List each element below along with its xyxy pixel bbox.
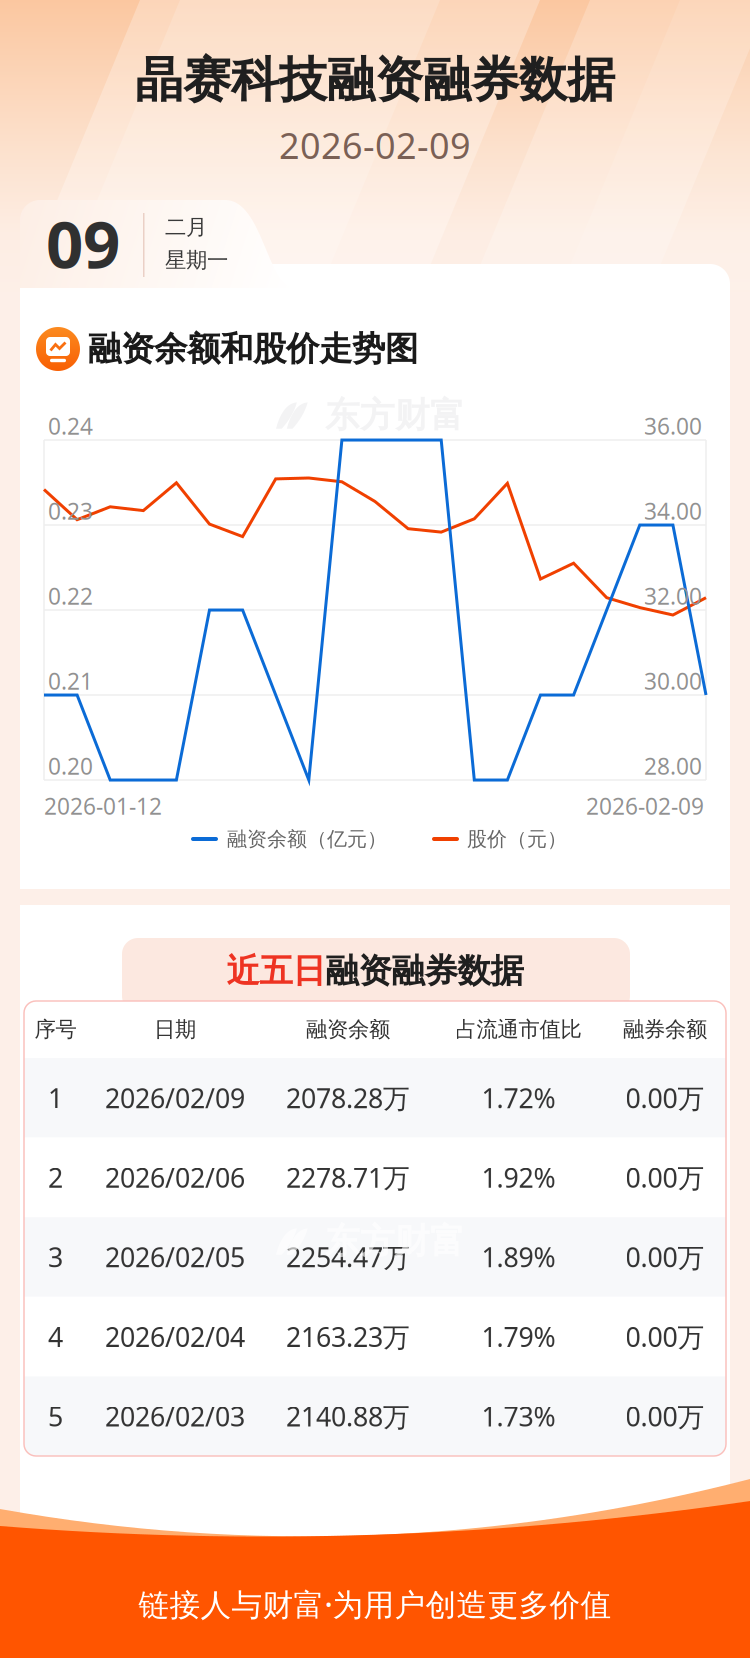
staticText: 3 <box>48 1239 63 1275</box>
staticText: 30.00 <box>644 666 702 696</box>
staticText: 0.00万 <box>625 1239 704 1275</box>
staticText: 0.00万 <box>625 1398 704 1434</box>
staticText: 1.92% <box>481 1160 555 1195</box>
staticText: 2026/02/04 <box>105 1319 245 1354</box>
staticText: 2078.28万 <box>286 1080 410 1115</box>
staticText: 日期 <box>154 1016 196 1043</box>
staticText: 2026/02/05 <box>105 1239 245 1275</box>
staticText: 融资余额和股价走势图 <box>88 328 418 369</box>
staticText: 东方财富 <box>325 394 465 437</box>
button[interactable]: 5 <box>24 1376 726 1456</box>
staticText: 2254.47万 <box>286 1239 410 1275</box>
staticText: 5 <box>48 1398 63 1434</box>
button[interactable]: 融资余额（亿元） <box>191 823 387 855</box>
staticText: 近五日 <box>226 950 325 991</box>
staticText: 34.00 <box>644 496 702 526</box>
staticText: 28.00 <box>644 751 702 781</box>
staticText: 1.72% <box>481 1080 555 1115</box>
staticText: 0.00万 <box>625 1160 704 1195</box>
staticText: 融资余额（亿元） <box>227 827 387 851</box>
staticText: 2163.23万 <box>286 1319 410 1354</box>
button[interactable]: 2 <box>24 1138 726 1217</box>
staticText: 2026-01-12 <box>44 791 162 821</box>
staticText: 2026-02-09 <box>586 791 704 821</box>
button[interactable]: 股价（元） <box>432 823 567 855</box>
staticText: 2278.71万 <box>286 1160 410 1195</box>
staticText: 2026-02-09 <box>279 121 471 169</box>
staticText: 晶赛科技融资融券数据 <box>135 50 615 109</box>
staticText: 09 <box>46 200 120 286</box>
staticText: 序号 <box>34 1016 76 1043</box>
staticText: 0.20 <box>48 751 93 781</box>
staticText: 4 <box>48 1319 63 1354</box>
staticText: 0.00万 <box>625 1319 704 1354</box>
staticText: 0.22 <box>48 581 93 611</box>
button[interactable]: 3 <box>24 1217 726 1297</box>
staticText: 1.73% <box>481 1398 555 1434</box>
staticText: 1.79% <box>481 1319 555 1354</box>
staticText: 2026/02/09 <box>105 1080 245 1115</box>
button[interactable]: 1 <box>24 1058 726 1138</box>
staticText: 1 <box>48 1080 63 1115</box>
staticText: 2140.88万 <box>286 1398 410 1434</box>
staticText: 星期一 <box>165 247 228 273</box>
staticText: 占流通市值比 <box>455 1016 581 1043</box>
button[interactable]: 4 <box>24 1297 726 1376</box>
staticText: 融资余额 <box>306 1016 390 1043</box>
staticText: 0.21 <box>48 666 93 696</box>
staticText: 东方财富 <box>325 1220 465 1263</box>
staticText: 0.00万 <box>625 1080 704 1115</box>
staticText: 股价（元） <box>467 827 567 851</box>
staticText: 2026/02/06 <box>105 1160 245 1195</box>
staticText: 二月 <box>165 214 207 240</box>
staticText: 2 <box>48 1160 63 1195</box>
staticText: 1.89% <box>481 1239 555 1275</box>
staticText: 融券余额 <box>623 1016 707 1043</box>
staticText: 0.24 <box>48 411 93 441</box>
staticText: 链接人与财富·为用户创造更多价值 <box>138 1584 611 1624</box>
staticText: 0.23 <box>48 496 93 526</box>
staticText: 32.00 <box>644 581 702 611</box>
staticText: 融资融券数据 <box>325 950 523 991</box>
staticText: 36.00 <box>644 411 702 441</box>
staticText: 2026/02/03 <box>105 1398 245 1434</box>
